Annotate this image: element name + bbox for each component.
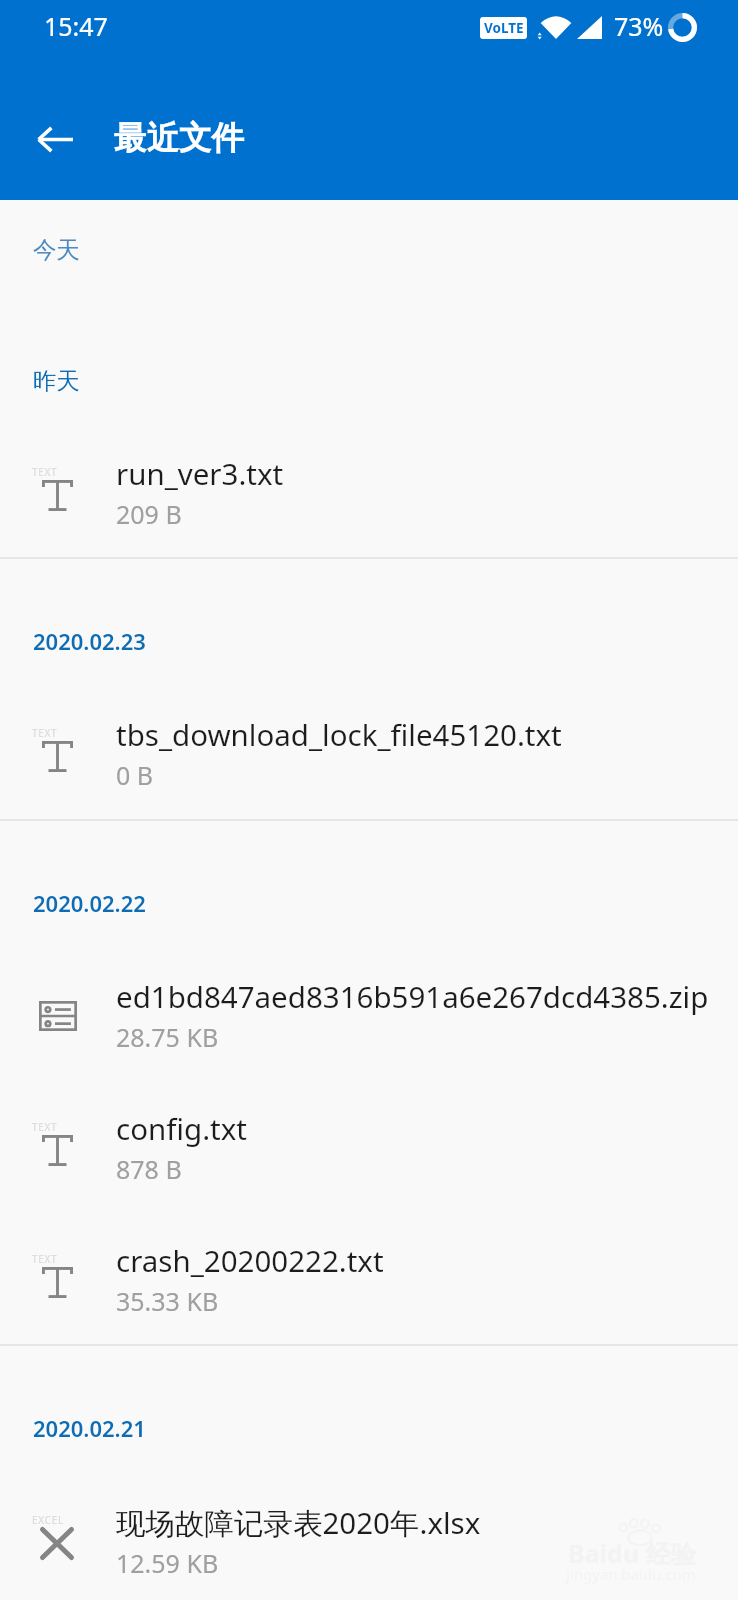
staticText: 209 B xyxy=(116,497,182,531)
staticText: config.txt xyxy=(116,1108,738,1148)
staticText: tbs_download_lock_file45120.txt xyxy=(116,714,738,754)
staticText: 现场故障记录表2020年.xlsx xyxy=(116,1502,738,1542)
staticText: 12.59 KB xyxy=(116,1546,219,1580)
staticText: crash_20200222.txt xyxy=(116,1240,738,1280)
staticText: TEXT xyxy=(32,1120,58,1134)
staticText: 2020.02.21 xyxy=(33,1413,146,1443)
staticText: TEXT xyxy=(32,1252,58,1266)
staticText: 最近文件 xyxy=(114,118,244,159)
staticText: 昨天 xyxy=(33,366,80,396)
staticText: 今天 xyxy=(33,235,80,265)
button[interactable]: TEXT xyxy=(0,1214,738,1331)
staticText: 28.75 KB xyxy=(116,1020,219,1054)
button[interactable]: EXCEL xyxy=(0,1476,738,1593)
button[interactable]: TEXT xyxy=(0,427,738,544)
staticText: 35.33 KB xyxy=(116,1284,219,1318)
staticText: TEXT xyxy=(32,726,58,740)
staticText: 878 B xyxy=(116,1152,182,1186)
staticText: 2020.02.23 xyxy=(33,626,146,656)
staticText: ed1bd847aed8316b591a6e267dcd4385.zip xyxy=(116,976,738,1016)
button[interactable]: TEXT xyxy=(0,1082,738,1199)
button[interactable]: TEXT xyxy=(0,688,738,805)
staticText: TEXT xyxy=(32,465,58,479)
staticText: 15:47 xyxy=(44,9,108,43)
staticText: VoLTE xyxy=(484,19,524,37)
button[interactable]: ed1bd847aed8316b591a6e267dcd4385.zip xyxy=(0,950,738,1067)
button[interactable]: Back xyxy=(24,109,85,169)
staticText: 2020.02.22 xyxy=(33,888,146,918)
staticText: EXCEL xyxy=(32,1513,64,1527)
staticText: 0 B xyxy=(116,758,154,792)
staticText: 73% xyxy=(614,9,664,43)
staticText: run_ver3.txt xyxy=(116,453,738,493)
